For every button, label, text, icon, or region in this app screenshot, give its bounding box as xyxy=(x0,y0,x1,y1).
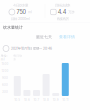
button[interactable]: 最近七天 xyxy=(35,33,53,40)
staticText: 10.9 xyxy=(53,98,59,102)
staticText: 900 xyxy=(2,76,8,80)
staticText: 10.6 xyxy=(24,98,30,102)
staticText: 10.11 xyxy=(62,98,68,102)
staticText: 万步 xyxy=(68,10,74,14)
staticText: 10.8 xyxy=(43,98,49,102)
staticText: 单位: ml xyxy=(1,54,8,61)
staticText: 4.4 xyxy=(58,9,67,15)
staticText: 300 xyxy=(2,90,8,94)
staticText: 750 xyxy=(16,9,26,15)
staticText: 查看详情 xyxy=(59,34,75,39)
staticText: 目标 2000ml xyxy=(11,17,30,21)
staticText: 再接再厉 xyxy=(56,17,68,21)
staticText: ml xyxy=(28,10,32,14)
staticText: 最近七天 xyxy=(36,34,52,39)
staticText: 10.5 xyxy=(14,98,20,102)
staticText: 今日饮水量 xyxy=(13,3,28,7)
staticText: 目标达成率 xyxy=(55,3,70,7)
button[interactable]: 查看详情 xyxy=(58,33,76,40)
staticText: 每日饮水 xyxy=(13,54,22,61)
staticText: 1500 xyxy=(1,62,8,66)
staticText: 10.7 xyxy=(33,98,39,102)
staticText: 饮水量统计 xyxy=(3,25,23,30)
button[interactable]: 今日饮水量 xyxy=(0,1,42,23)
staticText: 2021年10月11日 星期一 20:46 xyxy=(11,46,52,50)
staticText: 600 xyxy=(2,83,8,87)
button[interactable]: 目标达成率 xyxy=(40,1,84,23)
staticText: 1200 xyxy=(1,69,8,73)
